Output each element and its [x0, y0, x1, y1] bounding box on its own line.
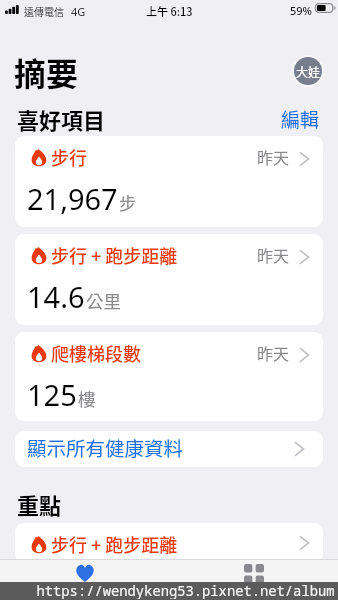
- staticText: 14.6: [27, 277, 85, 316]
- staticText: 喜好項目: [17, 103, 106, 135]
- staticText: 步行: [51, 144, 87, 170]
- button[interactable]: Browse: [169, 559, 338, 582]
- staticText: 昨天: [257, 145, 290, 168]
- button[interactable]: Profile: [292, 55, 324, 87]
- staticText: 步行 + 跑步距離: [51, 531, 178, 557]
- staticText: 21,967: [27, 179, 118, 218]
- staticText: 步: [119, 190, 137, 215]
- staticText: 編輯: [281, 105, 320, 133]
- button[interactable]: 步行: [15, 136, 323, 227]
- staticText: 59%: [290, 3, 312, 18]
- staticText: 上午 6:13: [146, 3, 193, 19]
- button[interactable]: Summary: [0, 559, 169, 582]
- button[interactable]: 顯示所有健康資料: [15, 431, 323, 467]
- staticText: 4G: [71, 4, 86, 19]
- button[interactable]: 步行 + 跑步距離: [15, 234, 323, 325]
- staticText: 遠傳電信: [24, 4, 64, 18]
- staticText: 樓: [78, 386, 96, 411]
- staticText: 爬樓梯段數: [51, 340, 141, 366]
- staticText: 昨天: [257, 341, 290, 364]
- button[interactable]: 步行 + 跑步距離: [15, 523, 323, 563]
- staticText: 公里: [86, 288, 121, 313]
- staticText: 昨天: [257, 243, 290, 266]
- staticText: 顯示所有健康資料: [27, 433, 184, 461]
- button[interactable]: 編輯: [281, 105, 320, 133]
- button[interactable]: 爬樓梯段數: [15, 332, 323, 421]
- staticText: 步行 + 跑步距離: [51, 242, 178, 268]
- staticText: 125: [27, 375, 77, 414]
- staticText: 摘要: [14, 49, 79, 95]
- staticText: https://wendykeng53.pixnet.net/album: [36, 581, 335, 599]
- staticText: 大娃: [296, 63, 321, 80]
- staticText: 重點: [17, 488, 62, 520]
